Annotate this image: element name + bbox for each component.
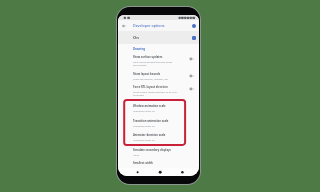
button[interactable]: Show layout bounds [118,72,199,85]
staticText: Show surface updates [133,55,163,59]
staticText: Animation scale .5x [133,124,183,127]
button[interactable]: Smallest width [118,161,199,171]
staticText: Animation scale .5x [133,138,183,141]
staticText: Show clip bounds, margins, etc. [133,77,183,80]
button[interactable]: Show surface updates [118,55,199,73]
button[interactable]: Toggle [189,74,195,78]
staticText: Transition animation scale [133,119,169,123]
staticText: Window animation scale [133,104,166,108]
button[interactable]: Back [118,20,199,31]
staticText: Developer options [133,23,165,28]
button[interactable]: Simulate secondary displays [118,148,199,161]
button[interactable]: On [118,31,199,44]
staticText: Force screen layout direction to RTL for… [133,90,177,96]
staticText: Smallest width [133,161,153,165]
staticText: None [133,153,183,156]
other: Back [122,24,126,28]
staticText: On [133,35,139,40]
staticText: Animator duration scale [133,133,166,137]
staticText: Flash entire window surfaces when they u… [133,60,177,66]
staticText: Force RTL layout direction [133,85,168,89]
button[interactable]: Search [192,24,196,28]
staticText: Show layout bounds [133,72,161,76]
button[interactable]: Toggle [189,57,195,61]
button[interactable]: Transition animation scale [118,119,199,133]
button[interactable]: Animator duration scale [118,133,199,148]
staticText: Drawing [133,47,146,51]
button[interactable]: Force RTL layout direction [118,85,199,104]
button[interactable]: Window animation scale [118,104,199,119]
staticText: Simulate secondary displays [133,148,171,152]
button[interactable]: Toggle [189,87,195,91]
staticText: Animation scale .5x [133,109,183,112]
